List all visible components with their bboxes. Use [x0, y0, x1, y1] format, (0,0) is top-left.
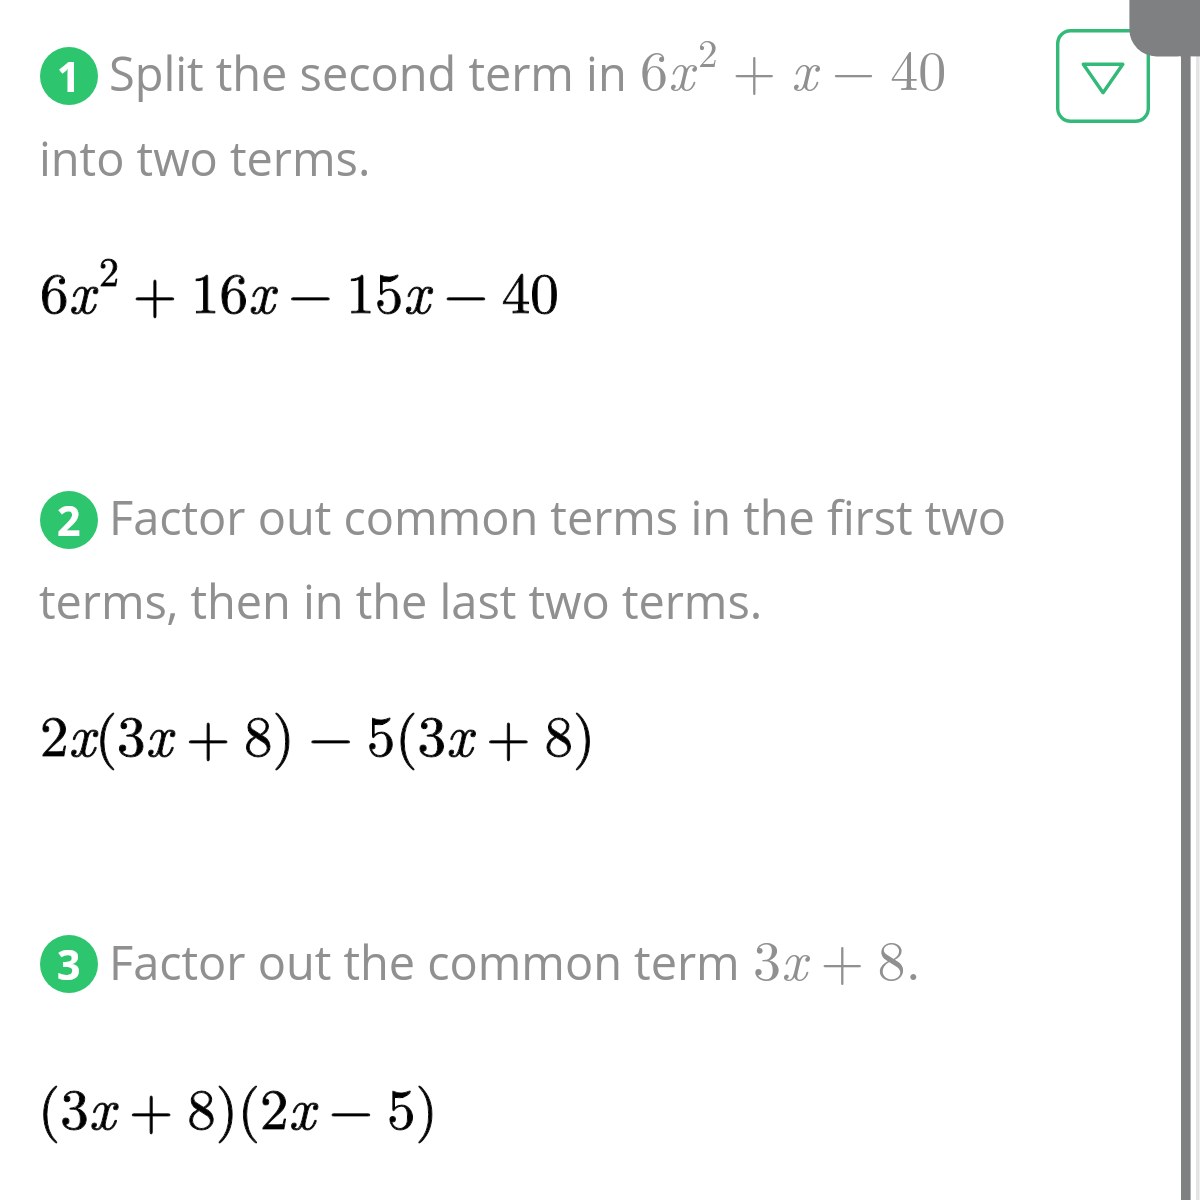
staticText: 6x 2 + x − 40 — [640, 23, 947, 107]
button[interactable] — [0, 0, 1170, 400]
staticText: Factor out the common term — [109, 930, 752, 994]
button[interactable]: Step 3 — [40, 935, 98, 993]
staticText: Factor out common terms in the first two — [109, 485, 1007, 549]
staticText: 3 — [57, 936, 81, 992]
button[interactable]: Step 2 — [40, 491, 98, 549]
staticText: (3x + 8)(2x − 5) — [38, 1065, 438, 1146]
button[interactable] — [0, 444, 1170, 844]
staticText: Split the second term in — [109, 41, 639, 105]
staticText: 1 — [57, 48, 81, 104]
button[interactable]: Collapse solution steps — [1056, 29, 1150, 123]
staticText: 3x + 8. — [753, 917, 921, 996]
button[interactable]: Step 1 — [40, 47, 98, 105]
staticText: 2x(3x + 8) − 5(3x + 8) — [40, 692, 596, 773]
staticText: terms, then in the last two terms. — [39, 569, 763, 633]
staticText: 6x 2 + 16x − 15x − 40 — [40, 241, 559, 329]
staticText: into two terms. — [39, 126, 371, 190]
button[interactable] — [0, 888, 1170, 1200]
staticText: 6x 2 + 16x − 15x − 40 — [40, 241, 559, 329]
staticText: 2x(3x + 8) − 5(3x + 8) — [40, 692, 596, 773]
staticText: (3x + 8)(2x − 5) — [38, 1065, 438, 1146]
staticText: 2 — [57, 492, 81, 548]
